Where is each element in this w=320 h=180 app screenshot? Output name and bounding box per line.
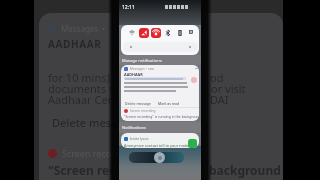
staticText: "Screen recor	[48, 162, 129, 178]
button[interactable]: Flashlight	[175, 28, 185, 38]
button[interactable]: Wi-Fi	[127, 28, 137, 38]
button[interactable]: Delete message	[125, 101, 151, 106]
button[interactable]: Mark as read	[158, 101, 180, 106]
staticText: documents on	[48, 81, 123, 96]
staticText: Invite lycos	[130, 136, 149, 141]
staticText: Messages • now	[130, 67, 155, 71]
staticText: or visit	[211, 81, 246, 96]
button[interactable]: Hotspot	[151, 28, 161, 38]
staticText: AADHAAR	[124, 72, 143, 77]
staticText: Aadhaar Cent	[48, 92, 119, 107]
staticText: Anonymize contact tell to your mobile	[124, 143, 192, 148]
staticText: Messages •	[61, 23, 106, 34]
button[interactable]: Bluetooth	[163, 28, 173, 38]
button[interactable]: Mobile data	[139, 28, 149, 38]
staticText: for 10 mins). To	[48, 70, 128, 85]
staticText: "Screen recording" is running in the bac…	[124, 114, 199, 119]
staticText: Delete messa	[52, 115, 123, 130]
button[interactable]: Brightness	[123, 42, 198, 52]
button[interactable]: Messages • now	[121, 65, 199, 121]
button[interactable]: Auto rotate	[187, 28, 195, 38]
staticText: AADHAAR	[48, 37, 102, 51]
staticText: DAI	[210, 92, 229, 107]
staticText: background	[209, 162, 281, 178]
staticText: Manage notifications	[122, 58, 162, 63]
button[interactable]: Invite lycos	[121, 133, 199, 148]
staticText: 12:11	[122, 4, 135, 11]
staticText: od	[210, 70, 224, 85]
staticText: Screen recor	[62, 147, 115, 159]
staticText: Notifications	[122, 125, 146, 130]
staticText: Screen recording	[130, 109, 156, 113]
